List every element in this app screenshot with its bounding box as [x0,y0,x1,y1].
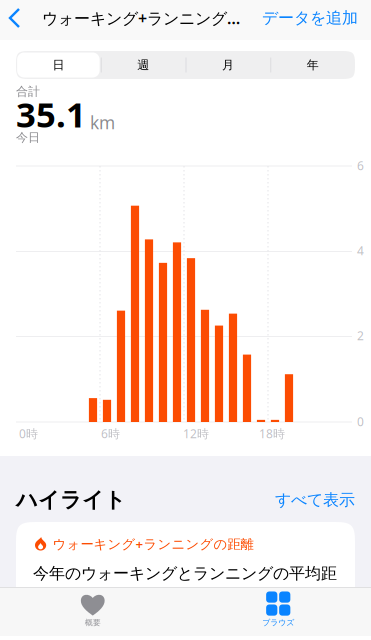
button[interactable]: データを追加 [262,0,371,40]
staticText: 日 [52,58,64,72]
staticText: 18時 [259,425,285,441]
button[interactable]: 日 [16,51,101,79]
staticText: ウォーキング+ランニングの距離 [52,535,253,553]
staticText: 4 [357,242,364,258]
staticText: ブラウズ [262,618,294,627]
button[interactable]: 週 [101,51,186,79]
button[interactable]: 年 [270,51,355,79]
button[interactable]: 月 [185,51,270,79]
staticText: 6時 [101,425,120,441]
staticText: すべて表示 [275,490,355,510]
staticText: ハイライト [16,487,126,513]
staticText: 0 [357,413,364,429]
staticText: 今日 [16,130,40,145]
button[interactable]: 概要 [0,587,185,636]
button[interactable]: ブラウズ [185,587,371,636]
staticText: 年 [307,58,319,72]
staticText: 35.1 [16,91,86,137]
button[interactable]: ウォーキング+ランニングの距離 [16,522,355,632]
staticText: データを追加 [262,8,358,28]
button[interactable]: 戻る [0,0,42,40]
staticText: 6 [357,157,364,173]
staticText: ウォーキング+ランニング… [42,7,240,29]
staticText: 12時 [183,425,209,441]
staticText: 離はまだあります。もっと歩きましょう [33,585,321,605]
staticText: km [90,111,115,134]
staticText: 0時 [19,425,38,441]
staticText: 月 [222,58,234,72]
staticText: 概要 [85,618,101,627]
staticText: 合計 [16,84,40,99]
button[interactable]: すべて表示 [275,490,371,510]
staticText: 今年のウォーキングとランニングの平均距 [33,564,337,583]
staticText: 2 [357,327,364,343]
staticText: 週 [137,58,149,72]
